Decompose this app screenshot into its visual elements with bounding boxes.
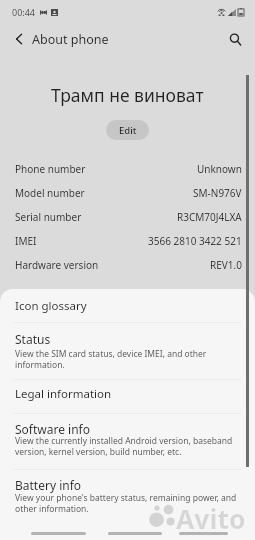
staticText: 3566 2810 3422 521 <box>148 234 242 248</box>
button[interactable]: IMEI <box>0 229 255 253</box>
staticText: View the currently installed Android ver… <box>15 435 233 457</box>
button[interactable]: Home <box>108 532 162 535</box>
staticText: Software info <box>15 421 90 437</box>
button[interactable]: Phone number <box>0 157 255 181</box>
button[interactable]: Back <box>6 26 32 52</box>
staticText: Avito <box>176 501 246 537</box>
button[interactable] <box>0 289 255 323</box>
staticText: Edit <box>119 124 137 137</box>
button[interactable]: Edit <box>106 120 149 140</box>
button[interactable]: Model number <box>0 181 255 205</box>
button[interactable]: Recents <box>31 532 86 535</box>
staticText: Status <box>15 331 51 347</box>
button[interactable]: Hardware version <box>0 253 255 277</box>
staticText: Serial number <box>15 210 82 224</box>
button[interactable] <box>0 380 255 414</box>
staticText: Model number <box>15 186 85 200</box>
staticText: View the SIM card status, device IMEI, a… <box>15 348 207 370</box>
staticText: SM-N976V <box>193 186 242 200</box>
button[interactable] <box>0 323 255 380</box>
staticText: 00:44 <box>12 6 36 18</box>
staticText: Трамп не виноват <box>51 83 204 107</box>
staticText: Legal information <box>15 386 112 402</box>
button[interactable] <box>0 470 255 529</box>
staticText: Battery info <box>15 477 82 493</box>
button[interactable]: Search <box>222 26 248 52</box>
staticText: Phone number <box>15 162 86 176</box>
staticText: Unknown <box>197 162 242 176</box>
staticText: About phone <box>32 31 109 48</box>
staticText: IMEI <box>15 234 37 248</box>
button[interactable]: Serial number <box>0 205 255 229</box>
staticText: R3CM70J4LXA <box>177 210 242 224</box>
staticText: Hardware version <box>15 258 99 272</box>
button[interactable]: Back <box>179 532 228 535</box>
staticText: Icon glossary <box>15 298 87 314</box>
staticText: REV1.0 <box>210 258 242 272</box>
button[interactable] <box>0 414 255 470</box>
staticText: View your phone's battery status, remain… <box>15 492 237 514</box>
